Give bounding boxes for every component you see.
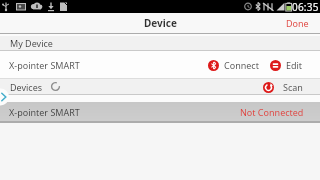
button[interactable]: Scan bbox=[263, 81, 303, 93]
staticText: X-pointer SMART bbox=[9, 106, 80, 118]
staticText: Devices bbox=[10, 81, 43, 93]
button[interactable]: X-pointer SMART bbox=[0, 102, 320, 121]
button[interactable]: Edit bbox=[270, 59, 303, 71]
button[interactable]: Done bbox=[286, 17, 309, 29]
button[interactable]: Connect bbox=[208, 59, 259, 71]
button[interactable]: X-pointer SMART bbox=[0, 51, 320, 78]
staticText: Done bbox=[286, 17, 309, 29]
staticText: Connect bbox=[224, 59, 259, 71]
staticText: Scan bbox=[283, 81, 303, 93]
staticText: X-pointer SMART bbox=[9, 59, 80, 71]
staticText: My Device bbox=[10, 37, 53, 49]
staticText: Not Connected bbox=[240, 106, 304, 118]
staticText: Edit bbox=[286, 59, 303, 71]
staticText: 06:35 bbox=[292, 0, 319, 13]
staticText: Device bbox=[144, 16, 177, 30]
